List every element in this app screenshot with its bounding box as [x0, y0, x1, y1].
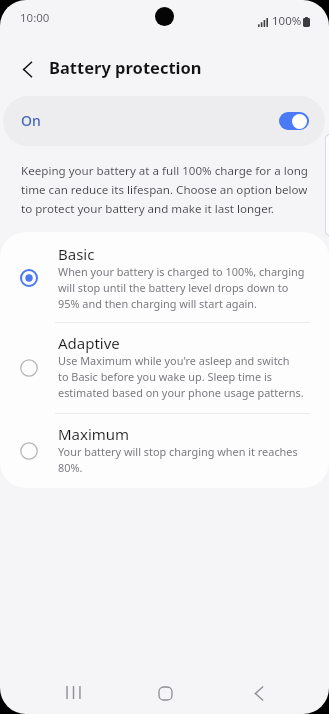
- staticText: Keeping your battery at a full 100% char…: [21, 160, 308, 217]
- staticText: Use Maximum while you're asleep and swit…: [58, 353, 304, 401]
- button[interactable]: Back: [235, 669, 283, 714]
- staticText: 100%: [272, 13, 302, 29]
- button[interactable]: Basic: [0, 232, 329, 322]
- staticText: Adaptive: [58, 334, 120, 353]
- staticText: Basic: [58, 245, 95, 264]
- button[interactable]: Adaptive: [0, 323, 329, 413]
- button[interactable]: Recent apps: [49, 668, 97, 714]
- button[interactable]: Maximum: [0, 414, 329, 488]
- button[interactable]: Navigate up: [10, 52, 44, 86]
- button[interactable]: Home: [141, 669, 189, 714]
- staticText: Your battery will stop charging when it …: [58, 444, 298, 476]
- staticText: Battery protection: [49, 57, 202, 79]
- staticText: When your battery is charged to 100%, ch…: [58, 264, 305, 312]
- staticText: 10:00: [20, 10, 50, 26]
- staticText: Maximum: [58, 425, 130, 444]
- button[interactable]: On: [3, 96, 325, 146]
- staticText: On: [21, 111, 41, 130]
